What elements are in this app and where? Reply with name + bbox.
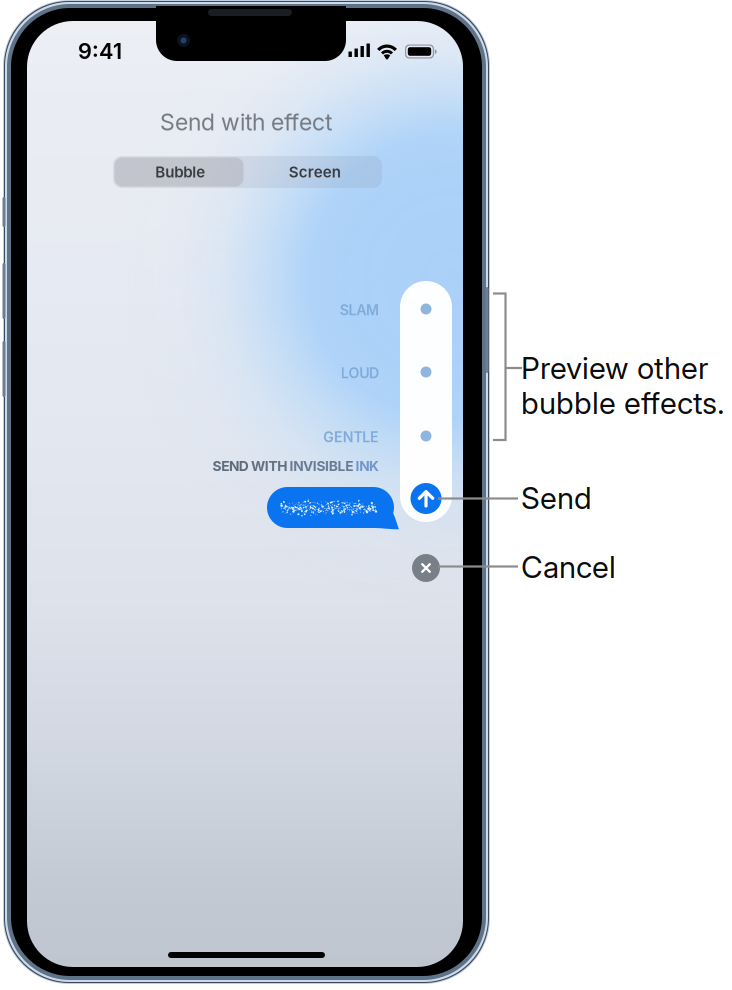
button[interactable]: Gentle effect xyxy=(400,421,452,451)
staticText: 9:41 xyxy=(78,38,122,64)
button[interactable]: Cancel xyxy=(412,554,440,582)
button[interactable]: Send xyxy=(400,481,452,516)
staticText: Send with effect xyxy=(160,108,332,136)
staticText: INK xyxy=(356,458,379,474)
button[interactable]: Slam effect xyxy=(400,294,452,324)
staticText: SLAM xyxy=(340,301,379,318)
button[interactable]: Bubble xyxy=(113,156,247,188)
staticText: SEND xyxy=(213,458,249,474)
staticText: LOUD xyxy=(341,364,379,381)
button[interactable]: Loud effect xyxy=(400,357,452,387)
staticText: Preview other xyxy=(521,350,708,386)
staticText: Bubble xyxy=(155,163,205,181)
staticText: GENTLE xyxy=(323,428,379,445)
staticText: WITH xyxy=(251,458,287,474)
staticText: bubble effects. xyxy=(521,385,725,421)
staticText: Cancel xyxy=(521,549,616,585)
staticText: Send xyxy=(521,480,592,516)
staticText: INVISIBLE xyxy=(290,458,353,474)
button[interactable]: Screen xyxy=(247,156,382,188)
staticText: Screen xyxy=(289,163,341,181)
